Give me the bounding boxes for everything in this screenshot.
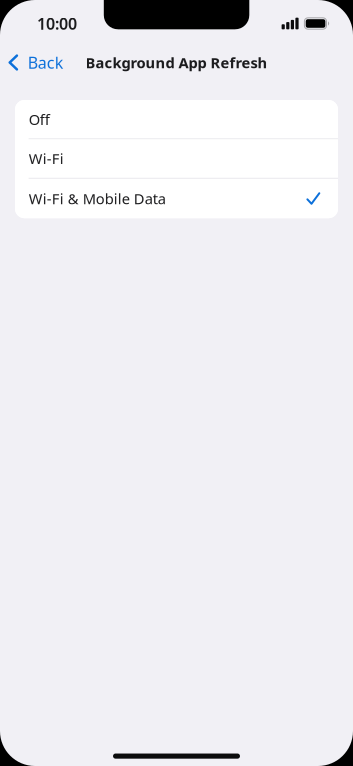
staticText: Background App Refresh xyxy=(85,53,267,72)
button[interactable]: Off xyxy=(15,100,338,138)
button[interactable]: Wi-Fi & Mobile Data xyxy=(15,179,338,218)
button[interactable]: Wi-Fi xyxy=(15,139,338,178)
staticText: Wi-Fi & Mobile Data xyxy=(29,189,166,208)
staticText: Wi-Fi xyxy=(29,149,64,168)
staticText: Back xyxy=(28,52,64,73)
button[interactable]: Back xyxy=(0,44,74,81)
staticText: Off xyxy=(29,109,50,129)
staticText: 10:00 xyxy=(37,13,77,34)
